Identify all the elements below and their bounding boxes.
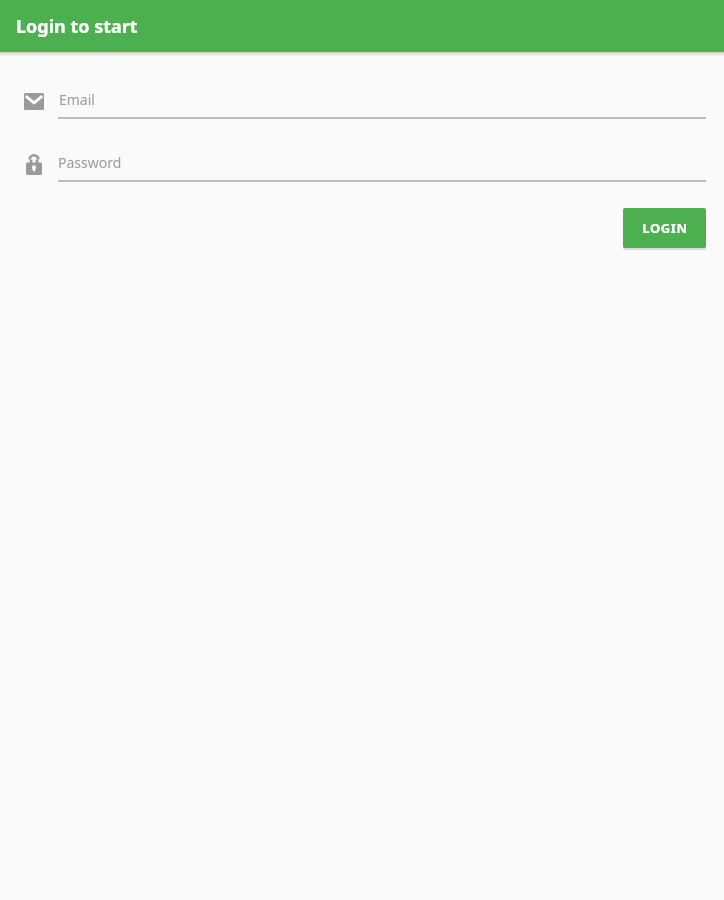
button[interactable]: LOGIN	[623, 208, 706, 248]
staticText: Email	[59, 90, 95, 109]
staticText: Password	[58, 153, 122, 172]
staticText: LOGIN	[642, 219, 688, 237]
other: Password	[26, 154, 42, 175]
staticText: Login to start	[16, 14, 138, 39]
button[interactable]: Email	[0, 85, 724, 117]
button[interactable]: Password	[0, 148, 724, 180]
other: Email	[24, 93, 44, 110]
